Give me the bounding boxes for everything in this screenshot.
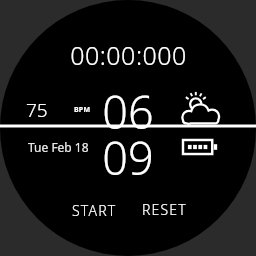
staticText: 75 xyxy=(26,97,48,123)
staticText: Tue Feb 18 xyxy=(28,139,89,155)
button[interactable]: RESET xyxy=(130,195,198,223)
button[interactable]: Weather: partly cloudy xyxy=(176,86,224,134)
button[interactable]: Battery level xyxy=(178,132,222,162)
button[interactable]: Tue Feb 18 xyxy=(28,136,108,158)
staticText: RESET xyxy=(142,200,187,219)
staticText: 09 xyxy=(102,127,154,188)
staticText: BPM xyxy=(74,105,91,115)
staticText: 06 xyxy=(102,81,154,142)
button[interactable]: START xyxy=(60,196,128,224)
staticText: 00:00:000 xyxy=(70,38,187,72)
button[interactable]: 00:00:000 xyxy=(0,0,256,256)
staticText: START xyxy=(72,201,117,220)
button[interactable]: 06 xyxy=(0,0,256,256)
button[interactable]: 75 xyxy=(26,96,70,124)
